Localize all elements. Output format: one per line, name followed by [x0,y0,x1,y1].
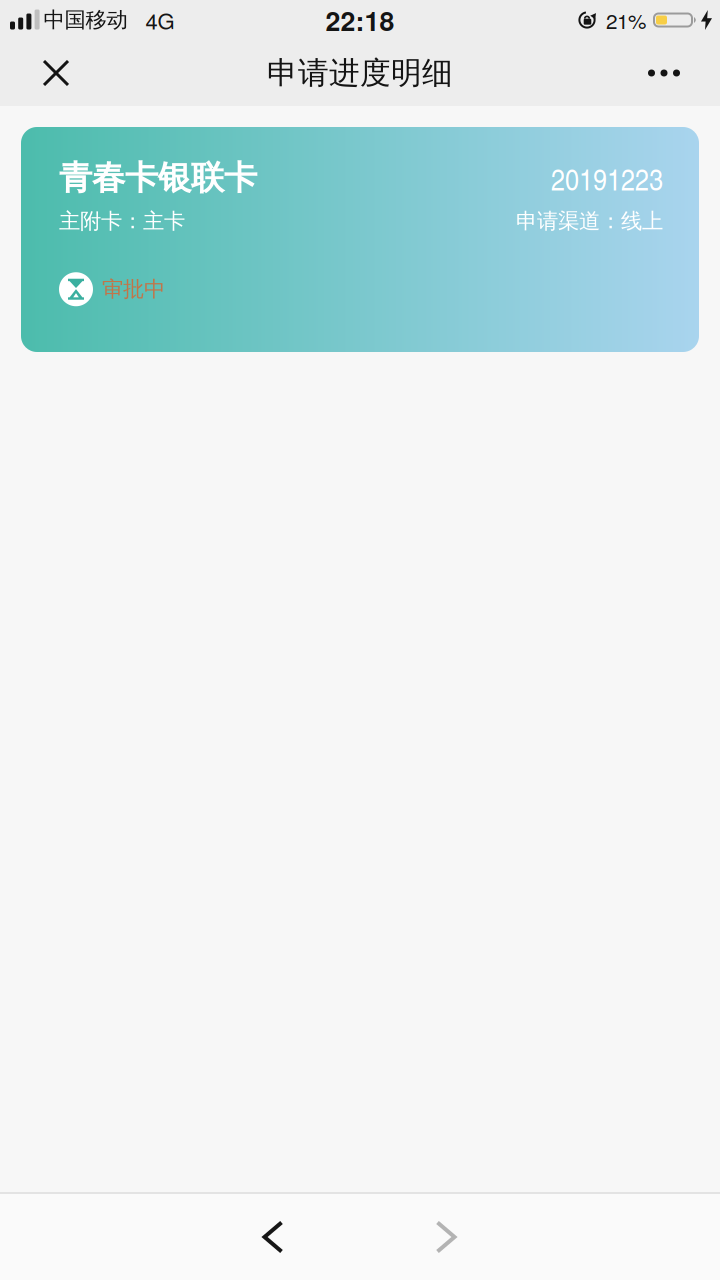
staticText: 青春卡银联卡 [59,158,257,198]
staticText: 20191223 [551,157,663,199]
button[interactable]: Close [28,45,84,101]
staticText: 主附卡：主卡 [59,208,185,234]
staticText: 4G [146,4,175,36]
button[interactable]: Back [243,1207,303,1267]
staticText: 21% [606,5,646,35]
staticText: 审批中 [102,276,165,302]
staticText: 22:18 [325,1,394,39]
staticText: 申请进度明细 [267,54,453,92]
button[interactable]: More [636,45,692,101]
staticText: 申请渠道：线上 [516,208,663,234]
button[interactable]: Forward [416,1207,476,1267]
staticText: 中国移动 [44,7,128,33]
button[interactable]: 青春卡银联卡 申请进度 [21,127,699,352]
